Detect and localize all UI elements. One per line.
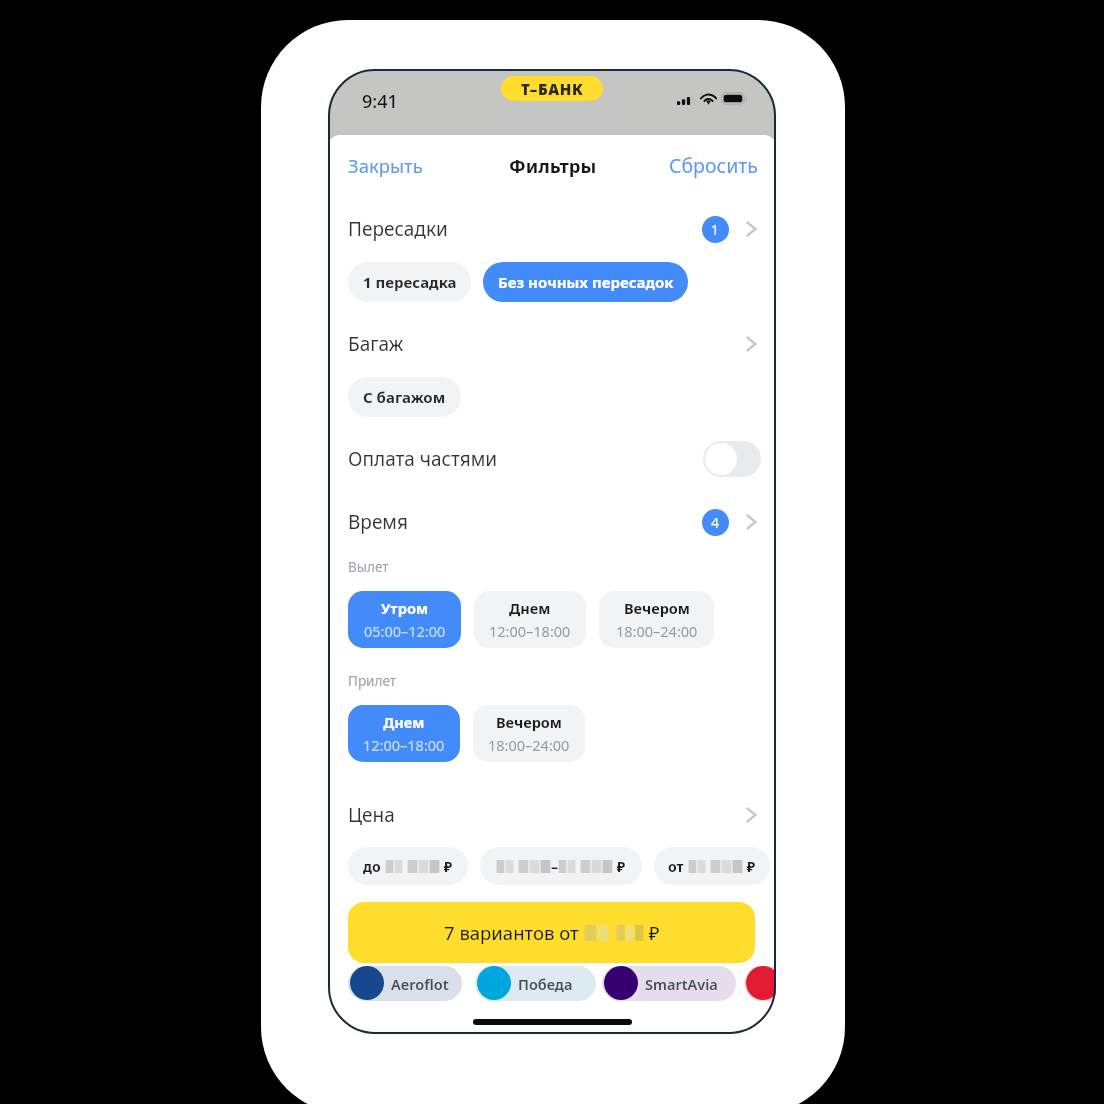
staticText: 12:00–18:00 [489, 621, 571, 641]
staticText: Закрыть [348, 153, 423, 178]
staticText: 9:41 [362, 89, 398, 114]
staticText: Днем [383, 712, 425, 732]
button[interactable]: Багаж [328, 320, 776, 368]
staticText: SmartAvia [645, 974, 718, 994]
staticText: 4 [711, 513, 720, 532]
staticText: ₽ [440, 857, 453, 876]
other: Оплата частями переключатель [703, 441, 761, 477]
staticText: Фильтры [509, 153, 597, 178]
button[interactable]: С багажом [348, 377, 461, 417]
staticText: 7 вариантов от [444, 920, 584, 945]
staticText: Вечером [624, 598, 690, 618]
button[interactable]: Вечером [599, 591, 714, 648]
staticText: С багажом [363, 387, 446, 407]
staticText: ₽ [613, 857, 626, 876]
button[interactable]: Закрыть [348, 148, 423, 182]
staticText: Вечером [496, 712, 562, 732]
button[interactable]: Aeroflot [348, 966, 462, 1001]
staticText: Утром [381, 598, 429, 618]
button[interactable]: Цена [328, 791, 776, 839]
button[interactable]: – [480, 847, 642, 885]
staticText: 18:00–24:00 [488, 735, 570, 755]
staticText: ₽ [743, 857, 756, 876]
staticText: – [551, 857, 558, 876]
staticText: ₽ [644, 920, 660, 945]
button[interactable]: Утром [348, 591, 461, 648]
button[interactable]: Днем [348, 705, 460, 762]
button[interactable]: Сбросить [669, 148, 758, 182]
staticText: Без ночных пересадок [498, 272, 674, 292]
button[interactable]: Авиакомпания [744, 966, 776, 1001]
staticText: Победа [518, 974, 573, 994]
button[interactable]: Пересадки [328, 205, 776, 253]
staticText: 1 [711, 220, 720, 239]
staticText: 18:00–24:00 [616, 621, 698, 641]
staticText: Днем [509, 598, 551, 618]
staticText: 05:00–12:00 [364, 621, 446, 641]
staticText: Прилет [348, 672, 396, 690]
staticText: Багаж [348, 331, 404, 357]
staticText: Aeroflot [391, 974, 449, 994]
button[interactable]: Днем [474, 591, 586, 648]
staticText: Время [348, 509, 408, 535]
button[interactable]: Оплата частями [328, 435, 776, 483]
button[interactable]: от [654, 847, 770, 885]
staticText: от [668, 857, 688, 876]
staticText: до [363, 857, 385, 876]
button[interactable]: SmartAvia [602, 966, 736, 1001]
staticText: Оплата частями [348, 446, 498, 472]
button[interactable]: 1 пересадка [348, 262, 471, 302]
button[interactable]: Победа [475, 966, 596, 1001]
button[interactable]: Время [328, 498, 776, 546]
button[interactable]: до [348, 847, 468, 885]
staticText: 12:00–18:00 [363, 735, 445, 755]
staticText: Сбросить [669, 152, 758, 179]
staticText: Вылет [348, 558, 389, 576]
staticText: 1 пересадка [363, 272, 457, 292]
staticText: Пересадки [348, 216, 448, 242]
button[interactable]: 7 вариантов от [348, 902, 755, 963]
button[interactable]: Фильтры [509, 148, 597, 182]
staticText: Цена [348, 802, 395, 828]
button[interactable]: Без ночных пересадок [483, 262, 688, 302]
button[interactable]: Вечером [473, 705, 585, 762]
staticText: T–БАНК [521, 79, 584, 99]
